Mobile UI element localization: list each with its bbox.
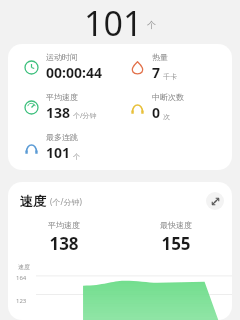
staticText: 101 (84, 0, 143, 40)
staticText: 00:00:44 (46, 63, 102, 82)
staticText: 7 (152, 63, 161, 82)
staticText: 164 (16, 274, 27, 282)
staticText: 中断次数 (152, 92, 184, 102)
button[interactable]: 最多连跳 (14, 132, 120, 162)
button[interactable]: 运动时间 (8, 44, 232, 170)
staticText: 0 (152, 103, 161, 122)
staticText: 个/分钟 (73, 111, 97, 121)
staticText: 热量 (152, 52, 168, 62)
staticText: 个 (147, 19, 156, 30)
button[interactable]: 热量 (120, 52, 226, 82)
staticText: 平均速度 (48, 220, 80, 230)
staticText: 最快速度 (160, 220, 192, 230)
staticText: (个/分钟) (50, 196, 82, 207)
staticText: 最多连跳 (46, 132, 78, 142)
button[interactable]: Expand chart (206, 192, 224, 210)
staticText: 个 (73, 152, 80, 161)
staticText: 次 (163, 112, 170, 121)
button[interactable]: 平均速度 (14, 92, 120, 122)
staticText: 速度 (20, 193, 46, 209)
button[interactable]: 中断次数 (120, 92, 226, 122)
staticText: 千卡 (163, 72, 177, 81)
staticText: 速度 (18, 263, 30, 271)
button[interactable]: 运动时间 (14, 52, 120, 82)
staticText: 123 (16, 297, 27, 305)
staticText: 101 (46, 143, 71, 162)
staticText: 155 (161, 232, 191, 255)
staticText: 138 (49, 232, 79, 255)
staticText: 平均速度 (46, 92, 78, 102)
staticText: 运动时间 (46, 52, 78, 62)
staticText: 138 (46, 103, 71, 122)
